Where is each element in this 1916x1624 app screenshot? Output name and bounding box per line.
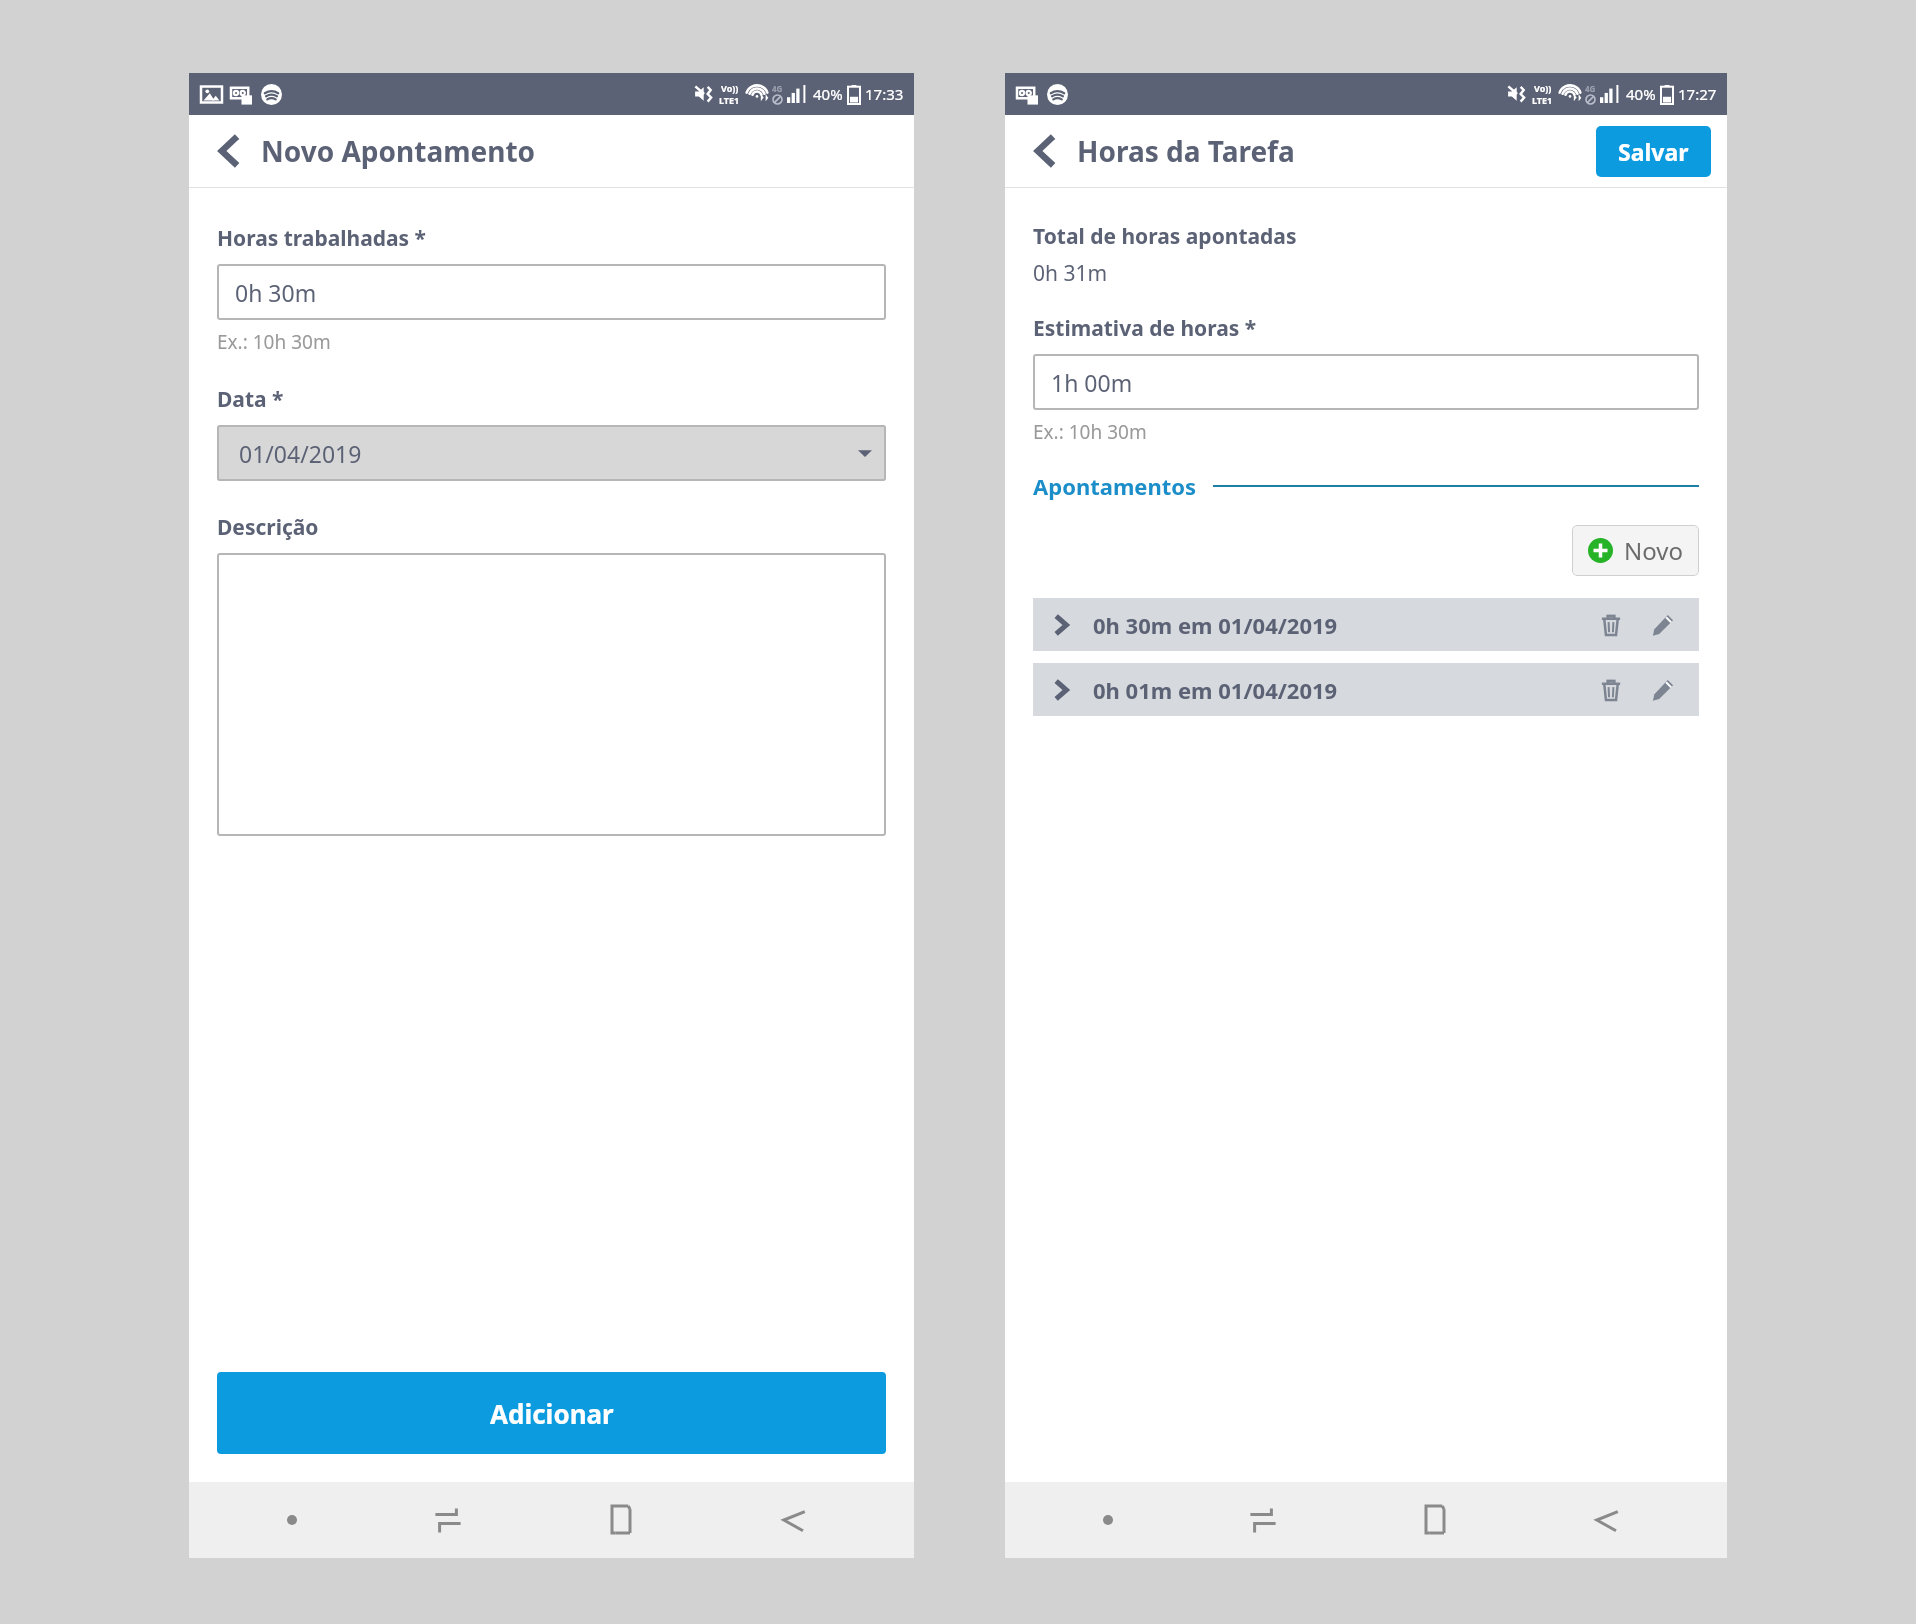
staticText: 0h 30m — [235, 277, 317, 308]
button[interactable]: Edit — [1643, 670, 1683, 710]
staticText: 17:27 — [1678, 84, 1717, 104]
button[interactable]: 01/04/2019 — [217, 425, 886, 481]
button[interactable]: 1h 00m — [1033, 354, 1699, 410]
staticText: Adicionar — [490, 1396, 614, 1431]
staticText: Estimativa de horas * — [1033, 314, 1257, 343]
button[interactable]: Salvar — [1596, 126, 1711, 177]
staticText: Apontamentos — [1033, 471, 1197, 501]
staticText: 40% — [813, 84, 843, 104]
staticText: 4G — [1585, 83, 1596, 94]
staticText: 4G — [772, 83, 783, 94]
button[interactable]: Home — [1349, 1504, 1521, 1536]
staticText: 0h 01m em 01/04/2019 — [1093, 675, 1338, 705]
button[interactable]: Home — [534, 1504, 707, 1536]
staticText: 0h 31m — [1033, 259, 1108, 288]
staticText: Ex.: 10h 30m — [1033, 419, 1147, 445]
button[interactable]: Horas da Tarefa — [1027, 132, 1295, 170]
staticText: 1h 00m — [1051, 367, 1133, 398]
staticText: Vo)) — [721, 82, 739, 94]
button[interactable]: Recent apps — [361, 1505, 534, 1535]
staticText: Vo)) — [1534, 82, 1552, 94]
button[interactable]: Novo — [1572, 525, 1699, 576]
button[interactable]: 0h 01m em 01/04/2019 — [1033, 663, 1699, 716]
button[interactable]: Delete — [1591, 605, 1631, 645]
button[interactable]: Novo Apontamento — [189, 115, 914, 187]
staticText: LTE1 — [719, 94, 740, 106]
staticText: Novo Apontamento — [261, 132, 536, 170]
staticText: Ex.: 10h 30m — [217, 329, 331, 355]
button[interactable]: Recent apps — [1177, 1505, 1349, 1535]
staticText: Data * — [217, 385, 284, 414]
staticText: 0h 30m em 01/04/2019 — [1093, 610, 1338, 640]
staticText: Total de horas apontadas — [1033, 222, 1297, 251]
button[interactable]: Delete — [1591, 670, 1631, 710]
button[interactable]: Edit — [1643, 605, 1683, 645]
button[interactable]: 0h 30m — [217, 264, 886, 320]
staticText: 40% — [1626, 84, 1656, 104]
button[interactable]: Back — [1521, 1505, 1693, 1535]
staticText: 17:33 — [865, 84, 904, 104]
staticText: Horas trabalhadas * — [217, 224, 426, 253]
button[interactable] — [217, 553, 886, 836]
staticText: LTE1 — [1532, 94, 1553, 106]
staticText: Descrição — [217, 513, 319, 542]
button[interactable]: Adicionar — [217, 1372, 886, 1454]
staticText: Salvar — [1618, 136, 1689, 167]
staticText: Novo — [1624, 534, 1683, 567]
button[interactable]: Back — [707, 1505, 880, 1535]
button[interactable]: 0h 30m em 01/04/2019 — [1033, 598, 1699, 651]
staticText: Horas da Tarefa — [1077, 132, 1295, 170]
staticText: 01/04/2019 — [239, 438, 362, 469]
